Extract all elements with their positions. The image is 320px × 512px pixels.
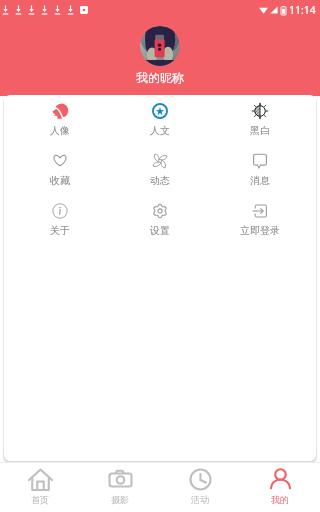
button[interactable]: 消息 bbox=[210, 145, 310, 195]
button[interactable]: 活动 bbox=[160, 462, 240, 512]
staticText: 11:14 bbox=[289, 3, 316, 17]
staticText: 黑白 bbox=[250, 124, 270, 137]
button[interactable]: 立即登录 bbox=[210, 195, 310, 245]
staticText: 人像 bbox=[50, 124, 70, 137]
staticText: 关于 bbox=[50, 224, 70, 237]
staticText: 我的 bbox=[271, 494, 289, 505]
staticText: 摄影 bbox=[111, 494, 129, 505]
button[interactable]: 个人头像 bbox=[140, 26, 180, 66]
button[interactable]: 我的 bbox=[240, 462, 320, 512]
staticText: 消息 bbox=[250, 174, 270, 187]
button[interactable]: 动态 bbox=[110, 145, 210, 195]
staticText: 我的昵称 bbox=[136, 70, 184, 85]
staticText: 收藏 bbox=[50, 174, 70, 187]
button[interactable]: 人文 bbox=[110, 95, 210, 145]
button[interactable]: 收藏 bbox=[10, 145, 110, 195]
button[interactable]: 黑白 bbox=[210, 95, 310, 145]
staticText: 立即登录 bbox=[240, 224, 280, 237]
staticText: 活动 bbox=[191, 494, 209, 505]
staticText: 设置 bbox=[150, 224, 170, 237]
staticText: 人文 bbox=[150, 124, 170, 137]
button[interactable]: 关于 bbox=[10, 195, 110, 245]
button[interactable]: 设置 bbox=[110, 195, 210, 245]
button[interactable]: 摄影 bbox=[80, 462, 160, 512]
staticText: 首页 bbox=[31, 494, 49, 505]
button[interactable]: 人像 bbox=[10, 95, 110, 145]
button[interactable]: 首页 bbox=[0, 462, 80, 512]
staticText: 动态 bbox=[150, 174, 170, 187]
